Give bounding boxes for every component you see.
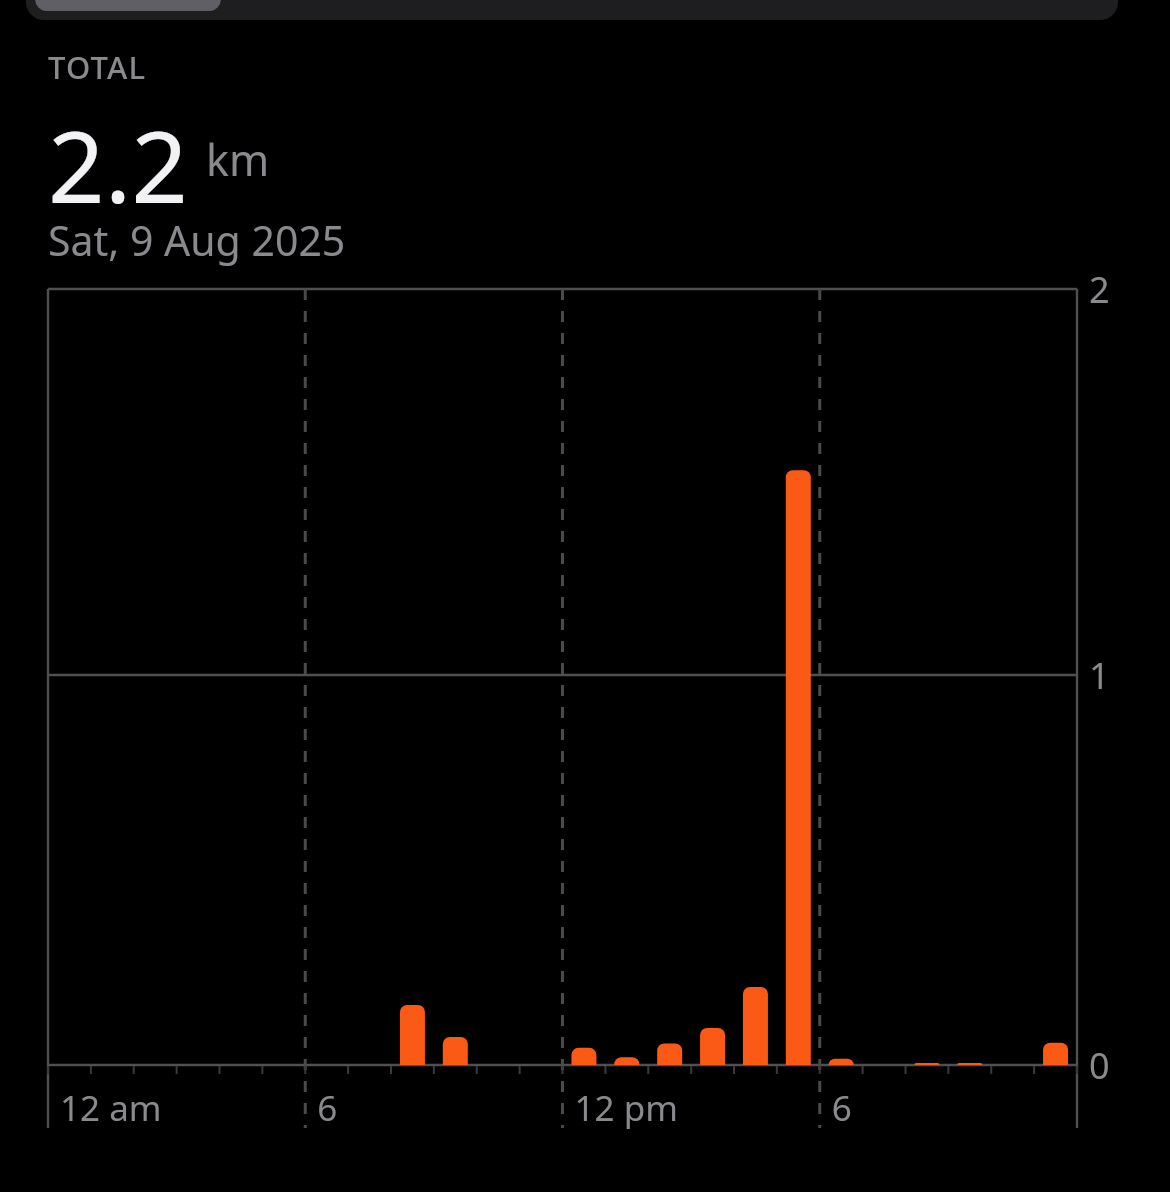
button[interactable]: Distance chart, total 2.2 km, Sat 9 Aug … [0, 0, 1170, 1192]
button[interactable]: Day [35, 0, 221, 11]
